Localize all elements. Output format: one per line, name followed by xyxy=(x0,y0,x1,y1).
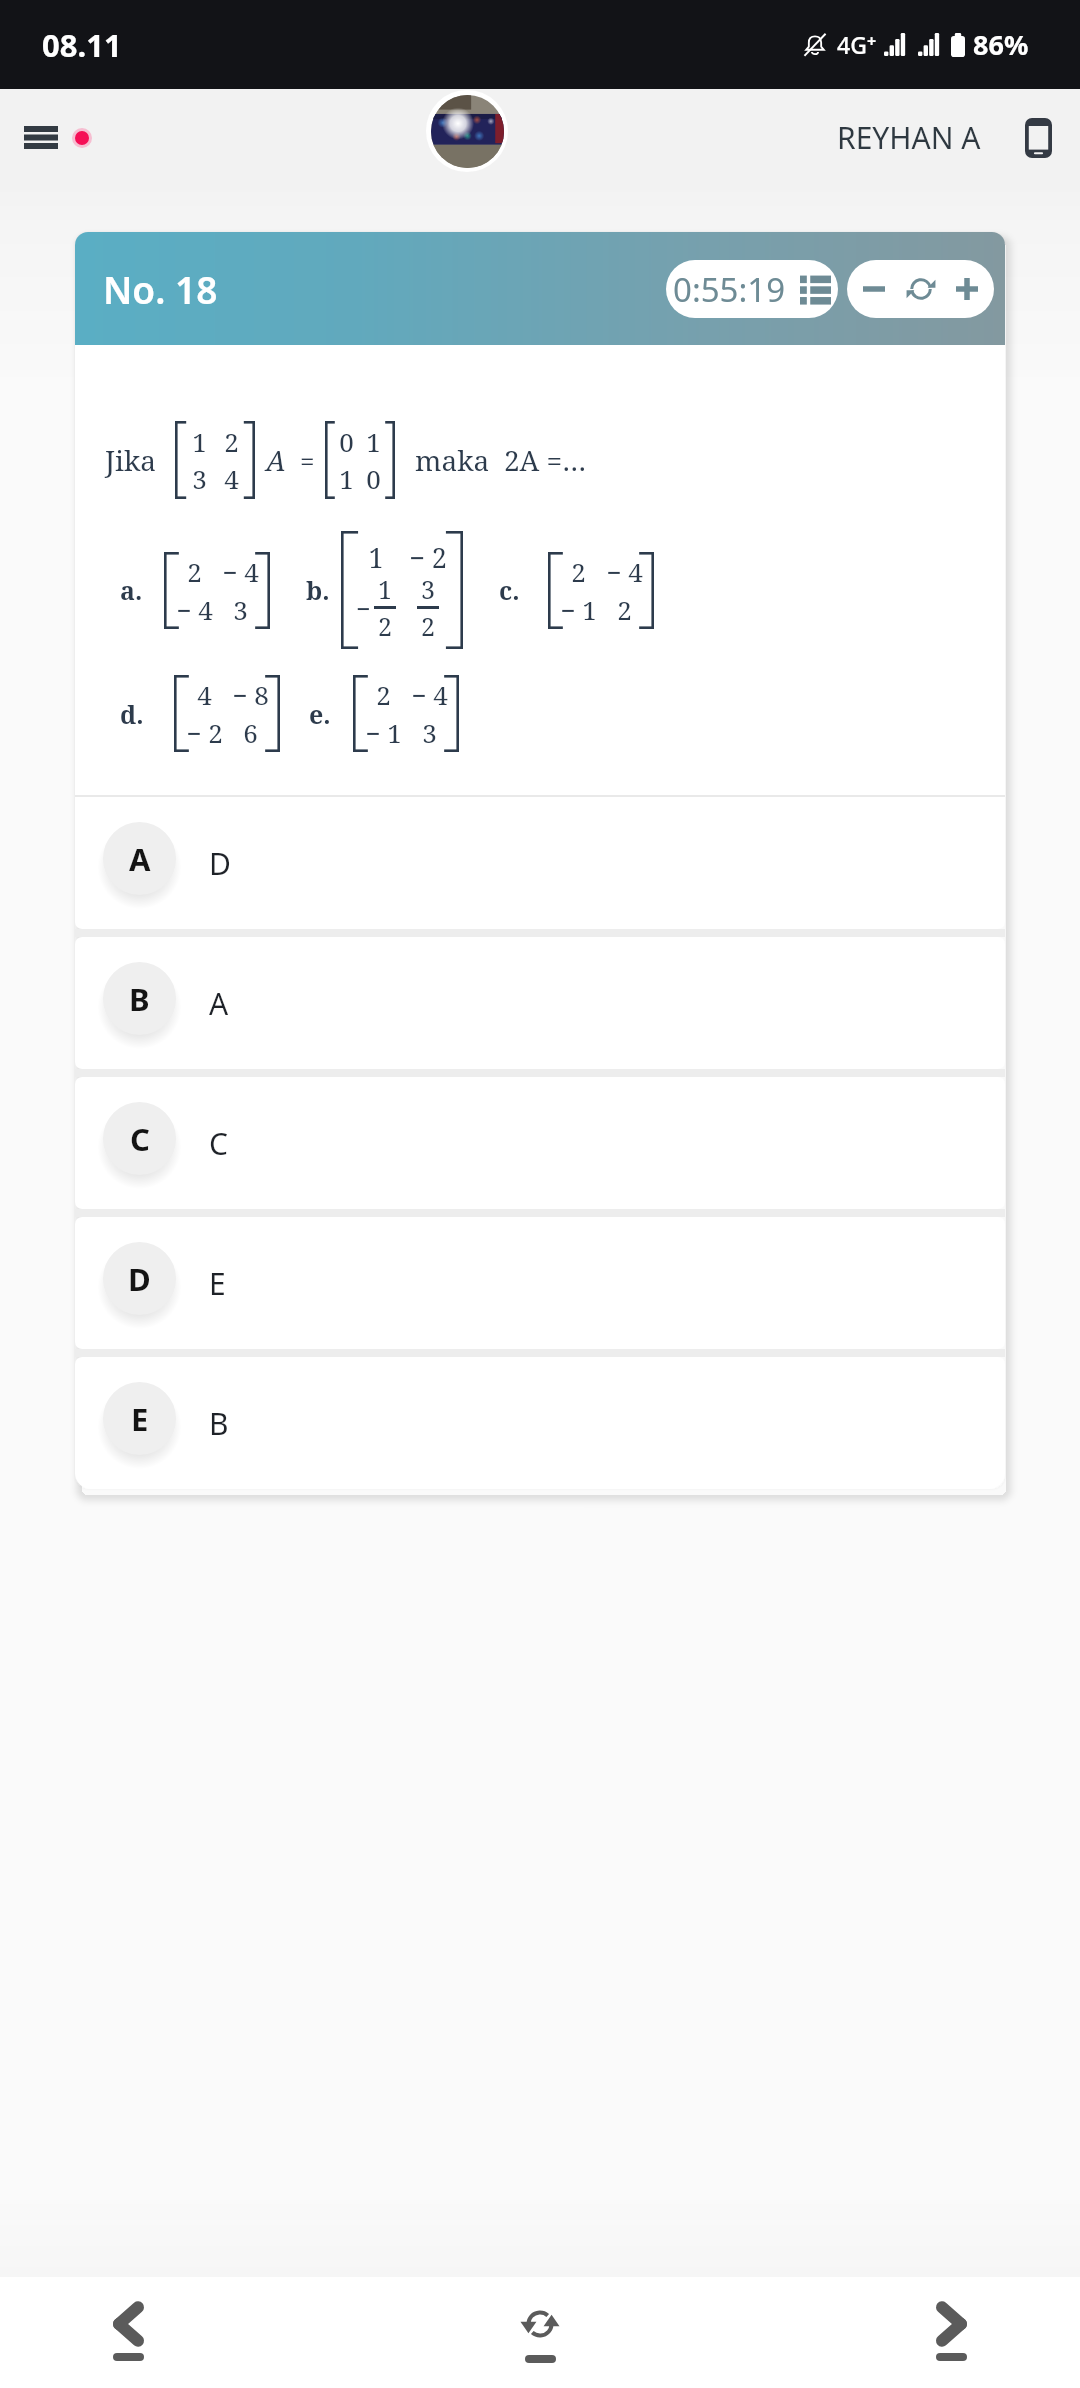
staticText: A xyxy=(209,983,229,1024)
staticText: 2 xyxy=(617,592,632,627)
staticText: 0 xyxy=(366,461,381,496)
button[interactable]: Next question xyxy=(876,2277,1026,2388)
staticText: C xyxy=(130,1118,150,1160)
staticText: − xyxy=(356,591,371,625)
staticText: A xyxy=(266,441,286,479)
staticText: d. xyxy=(120,697,144,731)
staticText: E xyxy=(209,1263,226,1304)
staticText: − 1 xyxy=(365,715,402,750)
button[interactable]: B xyxy=(75,937,1005,1069)
button[interactable]: Increase text size xyxy=(948,270,986,308)
staticText: 3 xyxy=(422,715,437,750)
staticText: 86% xyxy=(973,26,1029,63)
staticText: A xyxy=(129,838,151,880)
staticText: No. 18 xyxy=(103,264,218,314)
staticText: 2 xyxy=(376,677,391,712)
staticText: 1 xyxy=(339,461,354,496)
staticText: a. xyxy=(120,573,143,607)
button[interactable]: Menu xyxy=(6,104,110,171)
button[interactable]: A xyxy=(75,797,1005,929)
button[interactable]: Previous question xyxy=(53,2277,203,2388)
staticText: Jika xyxy=(105,441,157,479)
button[interactable]: 0:55:19 xyxy=(666,260,838,318)
staticText: − 4 xyxy=(176,592,213,627)
staticText: = xyxy=(300,443,315,478)
staticText: c. xyxy=(499,573,520,607)
staticText: 2 xyxy=(421,609,435,643)
staticText: 6 xyxy=(243,715,258,750)
staticText: 2 xyxy=(224,424,239,459)
staticText: − 4 xyxy=(222,554,259,589)
staticText: − 8 xyxy=(232,677,269,712)
staticText: D xyxy=(128,1258,151,1300)
button[interactable]: E xyxy=(75,1357,1005,1489)
staticText: 2 xyxy=(378,609,392,643)
staticText: 4 xyxy=(224,461,239,496)
staticText: + xyxy=(867,30,877,52)
staticText: b. xyxy=(306,573,330,607)
staticText: 4 xyxy=(197,677,212,712)
button[interactable]: REYHAN A xyxy=(833,105,985,170)
staticText: 08.11 xyxy=(42,24,122,66)
staticText: 1 xyxy=(378,572,392,606)
button[interactable]: Refresh xyxy=(465,2277,615,2388)
staticText: 1 xyxy=(192,424,207,459)
staticText: 3 xyxy=(233,592,248,627)
staticText: REYHAN A xyxy=(837,117,981,158)
staticText: e. xyxy=(309,697,331,731)
button[interactable]: Device xyxy=(1017,110,1060,166)
staticText: 3 xyxy=(192,461,207,496)
staticText: 1 xyxy=(366,424,381,459)
staticText: 2 xyxy=(571,554,586,589)
staticText: − 4 xyxy=(606,554,643,589)
staticText: B xyxy=(129,978,150,1020)
staticText: E xyxy=(131,1398,149,1440)
button[interactable]: Decrease text size xyxy=(855,270,893,308)
staticText: C xyxy=(209,1123,228,1164)
staticText: 0:55:19 xyxy=(673,267,786,312)
button[interactable]: D xyxy=(75,1217,1005,1349)
button[interactable]: C xyxy=(75,1077,1005,1209)
staticText: − 4 xyxy=(411,677,448,712)
staticText: 3 xyxy=(421,572,435,606)
staticText: − 2 xyxy=(409,539,447,576)
button[interactable]: Reset text size xyxy=(902,270,940,308)
staticText: 1 xyxy=(368,539,384,576)
staticText: D xyxy=(209,843,231,884)
staticText: 0 xyxy=(339,424,354,459)
staticText: B xyxy=(209,1403,229,1444)
button[interactable]: Profile xyxy=(426,90,508,172)
staticText: − 2 xyxy=(186,715,223,750)
staticText: 2 xyxy=(187,554,202,589)
staticText: 4G xyxy=(837,29,867,60)
staticText: maka 2A =… xyxy=(415,441,587,479)
staticText: − 1 xyxy=(560,592,597,627)
